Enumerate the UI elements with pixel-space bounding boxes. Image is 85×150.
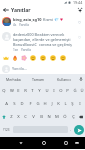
button[interactable]: O <box>57 84 64 97</box>
staticText: X <box>17 114 20 120</box>
staticText: N <box>47 114 51 120</box>
staticText: 4s <box>13 23 17 27</box>
button[interactable]: Yanıtla... <box>12 63 83 74</box>
button[interactable]: V <box>29 110 37 123</box>
staticText: Ş <box>71 101 74 107</box>
staticText: D <box>20 101 24 107</box>
staticText: Tamam <box>32 77 45 82</box>
button[interactable]: Like <box>76 17 83 27</box>
button[interactable]: Send <box>74 125 84 135</box>
button[interactable]: A <box>2 97 10 110</box>
staticText: Ö <box>63 114 67 120</box>
staticText: Q <box>2 88 6 94</box>
button[interactable]: Like <box>76 32 83 42</box>
staticText: S <box>13 101 16 107</box>
staticText: P <box>66 88 69 94</box>
button[interactable]: Emoji <box>38 52 48 63</box>
button[interactable]: Timeline settings <box>74 5 85 15</box>
button[interactable]: E <box>15 84 22 97</box>
button[interactable]: Recent apps <box>60 137 72 149</box>
button[interactable]: Y <box>36 84 43 97</box>
staticText: Kısmi 💎 <box>43 17 59 22</box>
button[interactable]: F <box>26 97 34 110</box>
staticText: U <box>45 88 49 94</box>
button[interactable]: Emoji <box>58 52 68 63</box>
button[interactable]: P <box>64 84 71 97</box>
staticText: dedeniz000 Bıraktım verecek kaçandan, el… <box>13 32 72 47</box>
staticText: Merhaba <box>6 77 21 82</box>
button[interactable]: Voice input <box>76 74 85 84</box>
staticText: Kullanıcı <box>57 77 71 82</box>
button[interactable]: J <box>48 97 55 110</box>
button[interactable]: N <box>45 110 53 123</box>
button[interactable]: Q <box>0 84 8 97</box>
staticText: Ğ <box>73 88 77 94</box>
button[interactable]: K <box>55 97 62 110</box>
button[interactable]: Shift <box>0 110 8 123</box>
staticText: O <box>59 88 63 94</box>
staticText: M <box>55 114 59 120</box>
button[interactable]: H <box>41 97 48 110</box>
staticText: Yanıtla <box>19 23 29 27</box>
staticText: G <box>36 101 40 107</box>
button[interactable]: M <box>53 110 61 123</box>
button[interactable]: Ğ <box>71 84 78 97</box>
button[interactable]: Kullanıcı <box>51 74 76 84</box>
button[interactable]: I <box>50 84 57 97</box>
button[interactable]: Ş <box>69 97 76 110</box>
button[interactable]: Backspace <box>77 110 85 123</box>
button[interactable]: Home <box>38 137 50 149</box>
button[interactable]: R <box>22 84 29 97</box>
button[interactable]: L <box>62 97 69 110</box>
staticText: F <box>29 101 32 107</box>
staticText: B <box>40 114 43 120</box>
button[interactable]: G <box>34 97 41 110</box>
button[interactable]: Merhaba <box>0 74 26 84</box>
button[interactable]: Emoji <box>19 52 28 63</box>
button[interactable]: Back <box>15 137 27 149</box>
button[interactable]: Emoji <box>1 52 10 63</box>
button[interactable]: Z <box>8 110 15 123</box>
staticText: I <box>79 101 81 107</box>
button[interactable]: Emoji <box>48 52 58 63</box>
button[interactable]: Tamam <box>26 74 51 84</box>
button[interactable]: Ö <box>61 110 69 123</box>
staticText: K <box>57 101 60 107</box>
button[interactable]: U <box>43 84 50 97</box>
staticText: V <box>32 114 35 120</box>
button[interactable]: ?123 <box>1 123 12 136</box>
button[interactable]: Ü <box>78 84 85 97</box>
button[interactable]: T <box>29 84 36 97</box>
button[interactable]: D <box>18 97 26 110</box>
button[interactable]: B <box>37 110 45 123</box>
staticText: J <box>51 101 53 107</box>
button[interactable]: bing_asia_sg10 <box>0 15 85 30</box>
button[interactable]: C <box>22 110 29 123</box>
staticText: Z <box>10 114 13 120</box>
staticText: Ü <box>80 88 84 94</box>
button[interactable]: Hide keyboard <box>71 137 83 149</box>
button[interactable]: dedeniz000 Bıraktım verecek kaçandan, el… <box>0 30 85 52</box>
staticText: . <box>70 127 72 132</box>
button[interactable]: W <box>8 84 15 97</box>
staticText: H <box>43 101 47 107</box>
button[interactable]: I <box>76 97 83 110</box>
staticText: Yanıtla... <box>12 66 27 71</box>
staticText: R <box>24 88 27 94</box>
staticText: L <box>64 101 67 107</box>
button[interactable]: Ç <box>69 110 77 123</box>
button[interactable]: Back <box>0 5 11 15</box>
button[interactable]: Emoji <box>28 52 38 63</box>
staticText: Yanıtla <box>21 48 31 52</box>
staticText: bing_asia_sg10 <box>13 17 42 22</box>
button[interactable]: S <box>10 97 18 110</box>
staticText: 1sn <box>13 48 19 52</box>
staticText: T <box>31 88 34 94</box>
staticText: W <box>10 88 14 94</box>
button[interactable]: Emoji <box>10 52 19 63</box>
staticText: C <box>24 114 27 120</box>
staticText: A <box>5 101 8 107</box>
button[interactable]: X <box>15 110 22 123</box>
